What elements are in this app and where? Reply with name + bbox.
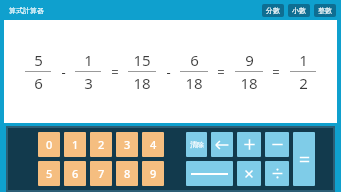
staticText: 9 [150, 166, 157, 181]
staticText: 分數 [266, 6, 280, 15]
staticText: 18 [240, 73, 258, 93]
staticText: 18 [133, 73, 151, 93]
staticText: - [61, 63, 66, 81]
button[interactable]: 小數 [288, 4, 310, 17]
staticText: 清除 [190, 140, 204, 149]
staticText: 1 [72, 137, 79, 152]
button[interactable]: Plus [237, 132, 261, 157]
button[interactable]: Multiply [237, 161, 261, 186]
staticText: 2 [299, 73, 308, 93]
staticText: 0 [46, 137, 53, 152]
staticText: = [111, 63, 119, 81]
button[interactable]: 4 [142, 132, 164, 157]
button[interactable]: Backspace [211, 132, 233, 157]
staticText: 18 [185, 73, 203, 93]
staticText: 4 [150, 137, 157, 152]
button[interactable]: Fraction bar [186, 161, 233, 186]
staticText: 算式計算器 [9, 6, 44, 15]
button[interactable]: 清除 [186, 132, 207, 157]
button[interactable]: 2 [90, 132, 112, 157]
staticText: 8 [124, 166, 131, 181]
staticText: 6 [34, 73, 43, 93]
button[interactable]: 9 [142, 161, 164, 186]
staticText: 6 [72, 166, 79, 181]
button[interactable]: 6 [64, 161, 86, 186]
staticText: 15 [133, 50, 151, 70]
staticText: 3 [124, 137, 131, 152]
staticText: = [217, 63, 225, 81]
staticText: - [166, 63, 171, 81]
staticText: 1 [299, 50, 308, 70]
staticText: 7 [98, 166, 105, 181]
staticText: 3 [84, 73, 93, 93]
staticText: 5 [46, 166, 53, 181]
staticText: 2 [98, 137, 105, 152]
button[interactable]: 7 [90, 161, 112, 186]
staticText: 小數 [292, 6, 306, 15]
staticText: 6 [190, 50, 199, 70]
staticText: 整數 [318, 6, 332, 15]
staticText: 9 [245, 50, 254, 70]
button[interactable]: 5 [38, 161, 60, 186]
staticText: = [272, 63, 280, 81]
button[interactable]: 0 [38, 132, 60, 157]
button[interactable]: 3 [116, 132, 138, 157]
button[interactable]: 1 [64, 132, 86, 157]
button[interactable]: 分數 [262, 4, 284, 17]
button[interactable]: Divide [265, 161, 289, 186]
button[interactable]: 8 [116, 161, 138, 186]
button[interactable]: Equals [293, 132, 315, 186]
button[interactable]: 整數 [314, 4, 336, 17]
button[interactable]: Minus [265, 132, 289, 157]
staticText: 1 [84, 50, 93, 70]
staticText: 5 [34, 50, 43, 70]
